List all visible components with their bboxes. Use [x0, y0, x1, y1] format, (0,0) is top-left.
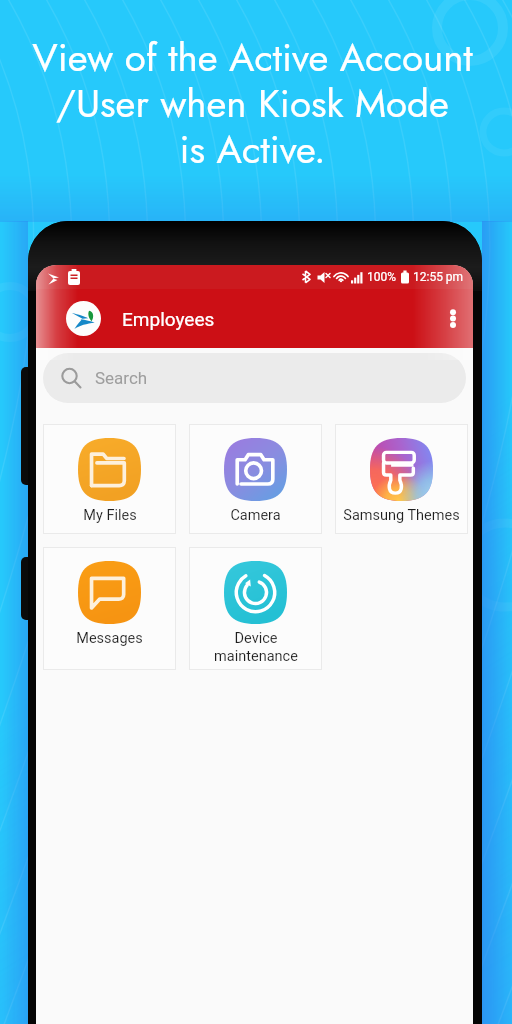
button[interactable]: Device maintenance — [189, 547, 322, 670]
button[interactable]: Messages — [43, 547, 176, 670]
staticText: 100% — [367, 270, 397, 284]
button[interactable]: More options — [433, 299, 473, 339]
staticText: Camera — [230, 507, 281, 524]
staticText: 12:55 pm — [413, 270, 464, 284]
button[interactable]: Samsung Themes — [335, 424, 468, 534]
staticText: Samsung Themes — [343, 507, 460, 524]
staticText: View of the Active Account /User when Ki… — [32, 30, 473, 178]
button[interactable]: Search — [43, 353, 466, 403]
staticText: Device maintenance — [214, 630, 298, 665]
button[interactable]: Camera — [189, 424, 322, 534]
staticText: Employees — [122, 308, 215, 330]
staticText: My Files — [83, 507, 137, 524]
button[interactable]: My Files — [43, 424, 176, 534]
staticText: Search — [95, 368, 148, 388]
staticText: Messages — [76, 630, 143, 647]
